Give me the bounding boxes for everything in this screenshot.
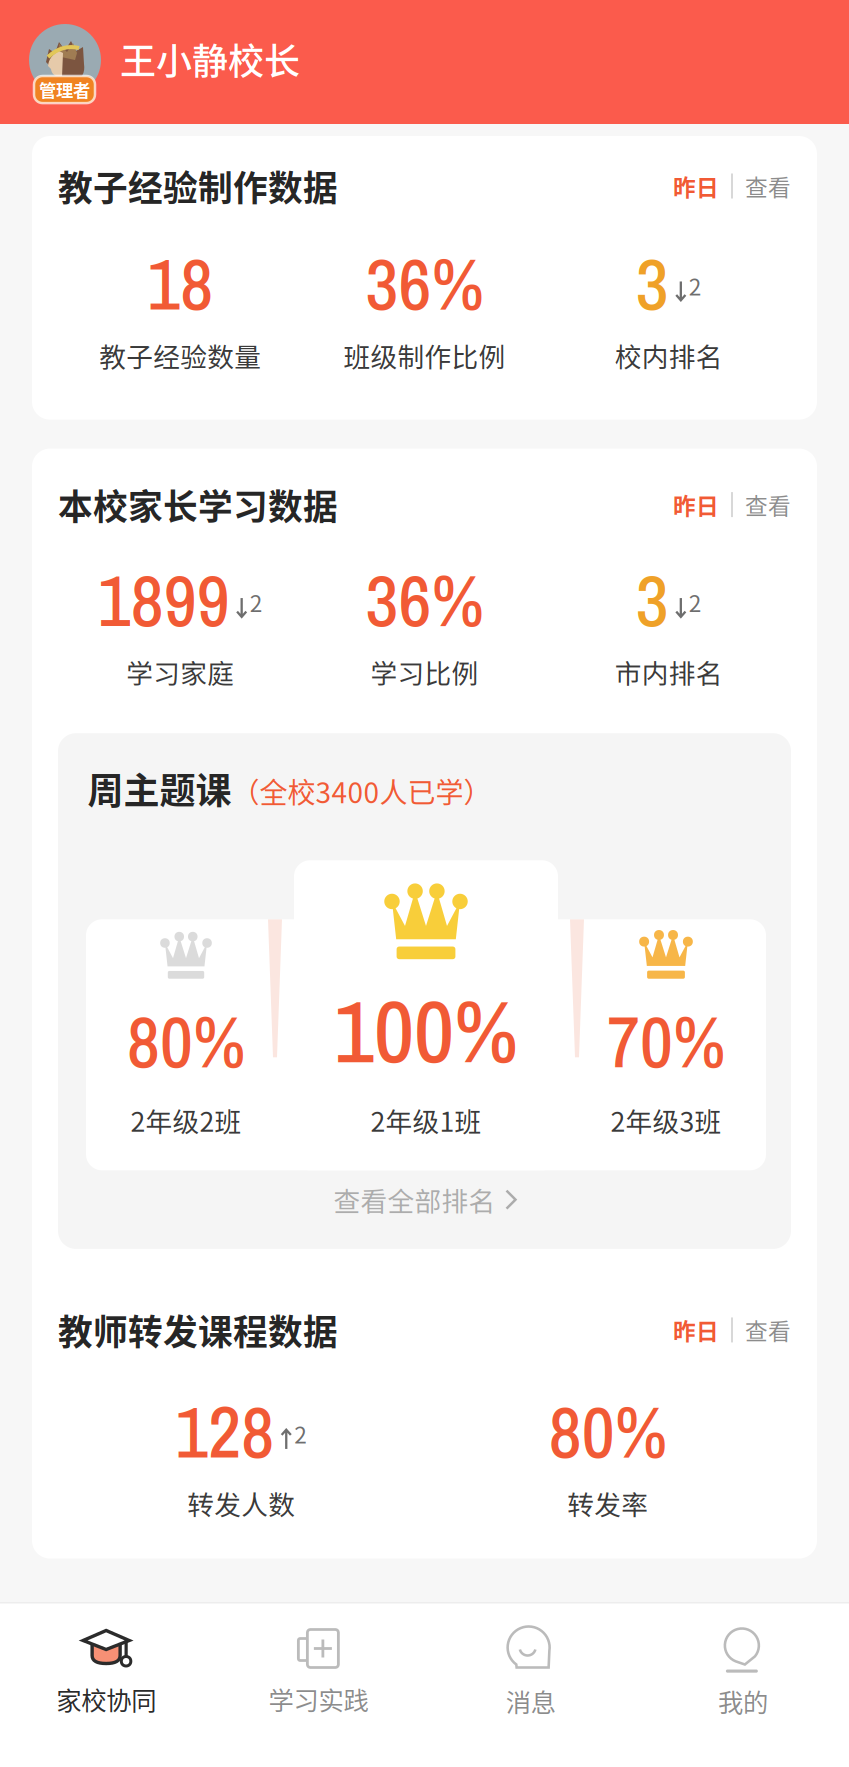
staticText: 2 — [689, 269, 702, 302]
staticText: 100% — [334, 971, 518, 1090]
staticText: 周主题课 — [87, 762, 231, 814]
button[interactable]: 昨日 — [673, 164, 791, 208]
staticText: 80% — [127, 993, 245, 1090]
staticText: 班级制作比例 — [343, 336, 505, 375]
staticText: 市内排名 — [615, 653, 723, 691]
staticText: 转发人数 — [187, 1484, 295, 1522]
staticText: 学习比例 — [370, 653, 478, 691]
staticText: 2 — [294, 1417, 307, 1450]
staticText: 128 — [175, 1383, 274, 1480]
staticText: 36% — [365, 552, 483, 649]
staticText: 教子经验制作数据 — [58, 161, 338, 211]
staticText: 校内排名 — [615, 336, 723, 375]
staticText: 管理者 — [39, 77, 90, 102]
staticText: 查看 — [745, 488, 791, 521]
staticText: 3 — [636, 235, 669, 332]
staticText: 本校家长学习数据 — [58, 479, 338, 530]
staticText: 查看全部排名 — [333, 1180, 495, 1219]
button[interactable]: 消息 — [424, 1603, 637, 1767]
staticText: 70% — [607, 993, 725, 1090]
staticText: 3 — [636, 552, 669, 649]
staticText: 2年级3班 — [610, 1101, 721, 1139]
staticText: 教子经验数量 — [99, 336, 261, 375]
staticText: 消息 — [506, 1682, 556, 1719]
staticText: 2 — [250, 586, 263, 619]
staticText: 学习实践 — [268, 1680, 368, 1717]
button[interactable]: 家校协同 — [0, 1603, 212, 1767]
staticText: 2年级1班 — [370, 1101, 481, 1139]
staticText: 昨日 — [673, 1313, 719, 1346]
staticText: 学习家庭 — [126, 653, 234, 691]
staticText: 昨日 — [673, 488, 719, 521]
staticText: 1899 — [98, 552, 230, 649]
staticText: 2年级2班 — [130, 1101, 241, 1139]
staticText: 36% — [365, 235, 483, 332]
staticText: 教师转发课程数据 — [58, 1305, 338, 1355]
button[interactable]: 昨日 — [673, 1307, 791, 1352]
staticText: 查看 — [745, 1313, 791, 1346]
button[interactable]: 昨日 — [673, 482, 791, 527]
staticText: 我的 — [718, 1682, 768, 1719]
staticText: 转发率 — [567, 1484, 648, 1522]
staticText: 昨日 — [673, 170, 719, 202]
staticText: 查看 — [745, 170, 791, 202]
button[interactable]: 查看全部排名 — [333, 1176, 518, 1223]
staticText: 家校协同 — [56, 1680, 156, 1717]
button[interactable]: 我的 — [637, 1603, 849, 1767]
staticText: 王小静校长 — [120, 33, 300, 85]
staticText: （全校3400人已学） — [231, 771, 491, 811]
staticText: 18 — [147, 235, 213, 332]
staticText: 80% — [549, 1383, 667, 1480]
button[interactable]: 学习实践 — [212, 1603, 424, 1767]
staticText: 2 — [689, 586, 702, 619]
